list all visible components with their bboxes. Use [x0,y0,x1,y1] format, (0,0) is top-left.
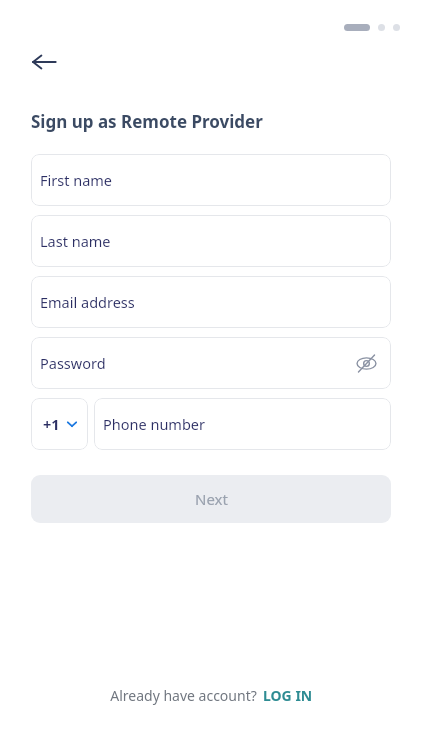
button[interactable]: Back [24,42,64,82]
button[interactable]: Password [31,337,391,389]
staticText: Already have account? [110,686,257,705]
staticText: Next [195,489,228,509]
button[interactable]: Phone number [94,398,391,450]
button[interactable]: Next [31,475,391,523]
button[interactable]: First name [31,154,391,206]
button[interactable]: Last name [31,215,391,267]
button[interactable]: LOG IN [263,686,313,705]
button[interactable]: Email address [31,276,391,328]
staticText: Phone number [103,414,205,434]
staticText: LOG IN [263,686,313,705]
button[interactable]: Show password [350,347,382,379]
button[interactable]: +1 [31,398,88,450]
staticText: First name [40,170,113,190]
staticText: Email address [40,292,135,312]
staticText: Sign up as Remote Provider [31,110,263,133]
staticText: Last name [40,231,111,251]
staticText: +1 [43,414,60,434]
staticText: Password [40,353,106,373]
